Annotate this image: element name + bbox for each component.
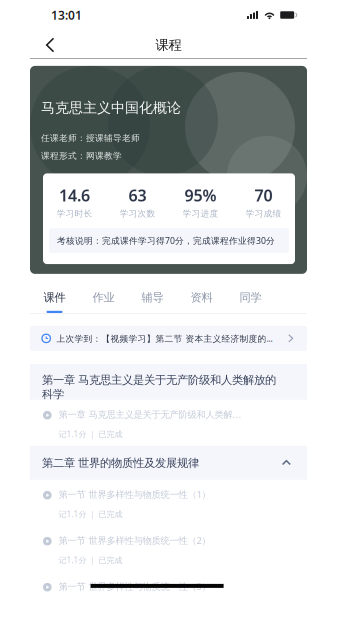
staticText: 14.6: [59, 184, 90, 206]
staticText: 课程: [155, 37, 181, 53]
staticText: 第一章 马克思主义是关于无产阶级和人类解放的科学: [42, 373, 276, 401]
button[interactable]: 作业: [79, 284, 128, 313]
button[interactable]: Back: [35, 32, 65, 58]
staticText: 95%: [184, 184, 216, 206]
button[interactable]: 同学: [226, 284, 275, 313]
staticText: 记1.1分 ｜ 已完成: [59, 429, 123, 439]
button[interactable]: 第一章 马克思主义是关于无产阶级和人类解...: [30, 400, 307, 446]
staticText: 学习进度: [182, 208, 218, 219]
button[interactable]: 上次学到：【视频学习】第二节 资本主义经济制度的...: [30, 326, 307, 351]
button[interactable]: 课件: [30, 284, 79, 313]
staticText: 第一节 世界多样性与物质统一性（2）: [59, 534, 211, 547]
staticText: 课件: [43, 290, 65, 305]
staticText: 记1.1分 ｜ 已完成: [59, 509, 123, 519]
staticText: 任课老师：授课辅导老师: [41, 132, 140, 143]
button[interactable]: 第一节 世界多样性与物质统一性（3）: [30, 572, 307, 618]
staticText: 第二章 世界的物质性及发展规律: [42, 456, 199, 470]
staticText: 第一章 马克思主义是关于无产阶级和人类解...: [59, 408, 242, 421]
staticText: 考核说明：完成课件学习得70分，完成课程作业得30分: [57, 235, 275, 246]
staticText: 第一节 世界多样性与物质统一性（3）: [59, 580, 211, 593]
staticText: 70: [254, 184, 272, 206]
button[interactable]: 资料: [177, 284, 226, 313]
button[interactable]: 第一节 世界多样性与物质统一性（2）: [30, 526, 307, 572]
staticText: 辅导: [141, 290, 163, 305]
staticText: 上次学到：【视频学习】第二节 资本主义经济制度的...: [56, 332, 272, 344]
button[interactable]: 第二章 世界的物质性及发展规律: [30, 446, 307, 480]
staticText: 学习成绩: [245, 208, 281, 219]
staticText: 同学: [239, 290, 261, 305]
staticText: 学习时长: [56, 208, 92, 219]
button[interactable]: 第一节 世界多样性与物质统一性（1）: [30, 480, 307, 526]
button[interactable]: 辅导: [128, 284, 177, 313]
staticText: 63: [128, 184, 146, 206]
staticText: 13:01: [51, 7, 82, 23]
staticText: 课程形式：网课教学: [41, 150, 122, 161]
staticText: 学习次数: [119, 208, 155, 219]
staticText: 记1.1分 ｜ 已完成: [59, 555, 123, 565]
staticText: 第一节 世界多样性与物质统一性（1）: [59, 488, 211, 501]
staticText: 马克思主义中国化概论: [41, 99, 181, 116]
staticText: 资料: [190, 290, 212, 305]
button[interactable]: 第一章 马克思主义是关于无产阶级和人类解放的科学: [30, 364, 307, 400]
staticText: 作业: [92, 290, 114, 305]
